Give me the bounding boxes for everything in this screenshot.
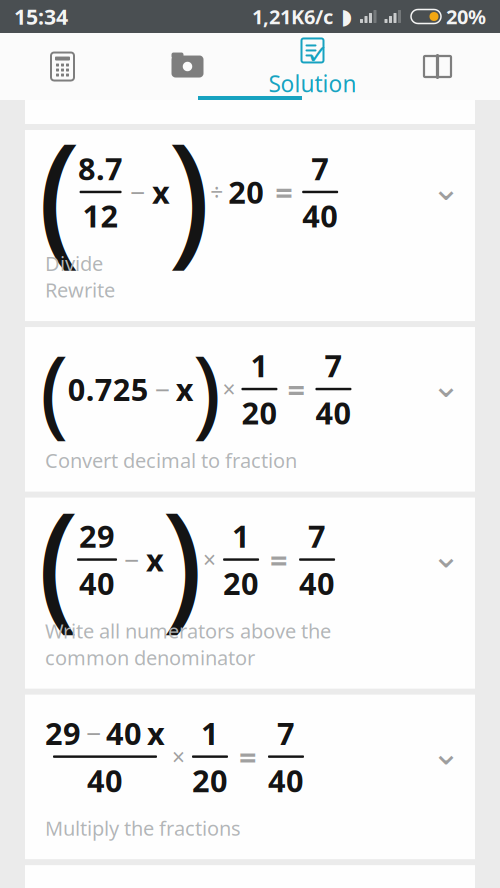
button[interactable]: Camera (125, 33, 250, 100)
staticText: − (130, 174, 145, 210)
button[interactable]: ✓ (250, 33, 375, 100)
staticText: 20 (241, 392, 277, 433)
staticText: Divide Rewrite (45, 250, 115, 303)
button[interactable]: Calculator (0, 33, 125, 100)
staticText: Write all numerators above the common de… (45, 617, 331, 671)
staticText: 20 (228, 172, 264, 212)
staticText: Solution (268, 68, 356, 98)
staticText: ⌄ (431, 733, 460, 772)
staticText: = (239, 736, 257, 777)
staticText: ) (193, 325, 222, 453)
staticText: 7 (277, 713, 295, 753)
staticText: ◗ (341, 4, 352, 29)
staticText: 1,21K6/c (252, 3, 333, 30)
staticText: ✓ (306, 39, 328, 70)
staticText: 7 (324, 345, 342, 386)
staticText: 40 (87, 760, 123, 801)
staticText: × (172, 742, 185, 772)
staticText: x (152, 172, 170, 212)
staticText: 40 (299, 563, 335, 603)
staticText: − (155, 371, 170, 407)
staticText: ( (37, 467, 79, 652)
staticText: ( (40, 325, 69, 453)
staticText: 29 (79, 516, 115, 556)
staticText: 1 (250, 345, 268, 386)
button[interactable]: ( (25, 130, 475, 321)
staticText: ⌄ (431, 536, 460, 575)
staticText: 20% (446, 3, 486, 30)
staticText: ( (37, 96, 80, 288)
staticText: = (287, 369, 305, 409)
staticText: 1 (201, 713, 219, 753)
staticText: Convert decimal to fraction (45, 447, 297, 474)
button[interactable]: ( (25, 498, 475, 689)
staticText: 40 (79, 563, 115, 603)
staticText: × (203, 544, 216, 575)
staticText: 40 (302, 195, 338, 236)
staticText: = (270, 539, 288, 580)
staticText: 20 (223, 563, 259, 603)
staticText: 7 (311, 148, 329, 189)
staticText: ÷ (210, 177, 223, 207)
staticText: x (176, 369, 194, 409)
staticText: 1 (232, 516, 250, 556)
staticText: 12 (83, 195, 119, 236)
staticText: 40 (268, 760, 304, 801)
staticText: 40 (106, 713, 142, 753)
staticText: − (86, 715, 101, 751)
staticText: 0.725 (68, 369, 149, 409)
staticText: ⌄ (431, 365, 460, 405)
button[interactable]: ( (25, 327, 475, 492)
staticText: × (222, 374, 235, 404)
staticText: 15:34 (14, 2, 68, 31)
staticText: − (124, 542, 139, 577)
button[interactable]: Textbook (375, 33, 500, 100)
staticText: x (147, 713, 165, 753)
staticText: Multiply the fractions (45, 815, 241, 841)
button[interactable]: 29 (25, 695, 475, 859)
staticText: ) (168, 96, 211, 288)
staticText: 29 (45, 713, 81, 753)
staticText: ⌄ (431, 168, 460, 208)
staticText: 7 (308, 516, 326, 556)
staticText: = (275, 172, 293, 212)
staticText: 20 (192, 760, 228, 801)
staticText: 8.7 (78, 148, 123, 189)
staticText: 40 (315, 392, 351, 433)
staticText: ) (162, 467, 204, 652)
staticText: x (146, 539, 164, 580)
